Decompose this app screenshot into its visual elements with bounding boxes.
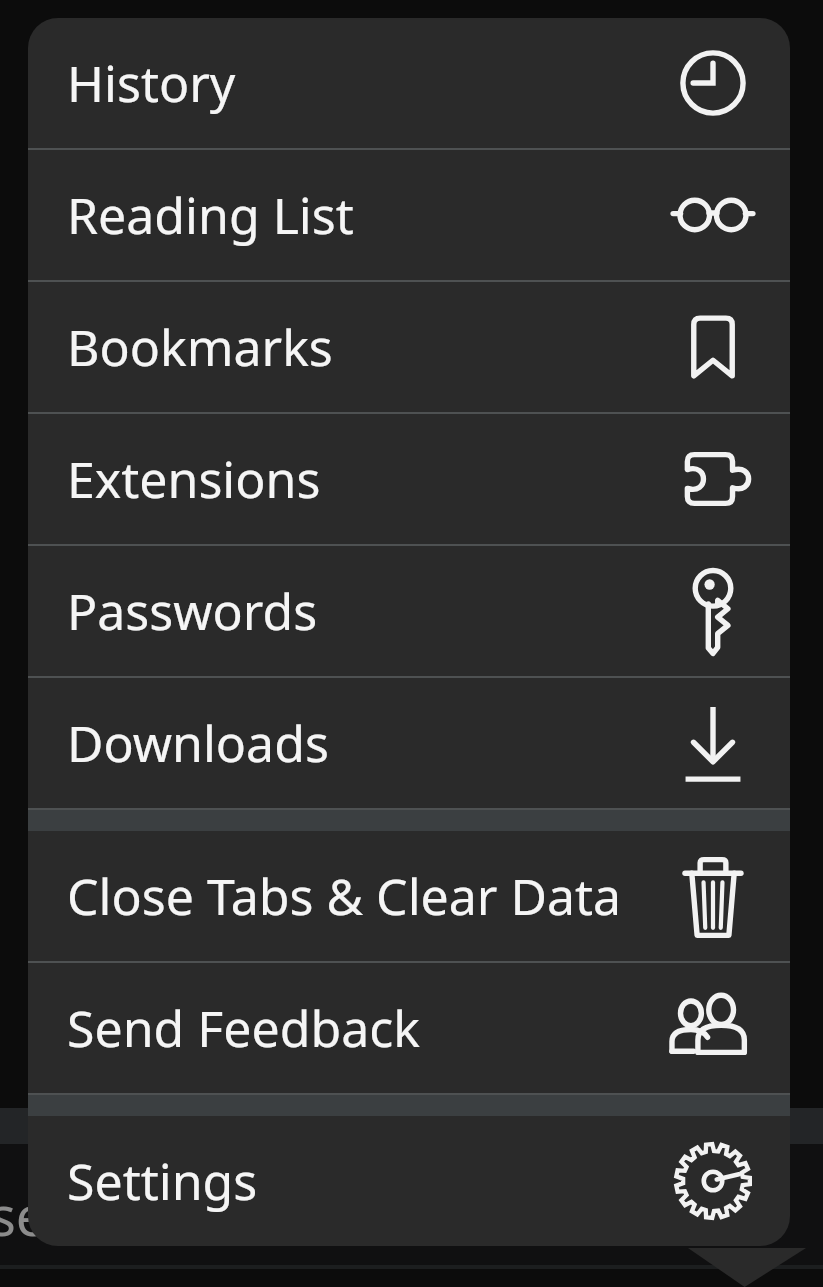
button[interactable]: Bookmarks [28, 282, 790, 412]
other: Settings [670, 1138, 756, 1224]
staticText: Bookmarks [67, 313, 670, 381]
other: Reading List [670, 172, 756, 258]
staticText: Extensions [67, 445, 670, 513]
button[interactable]: Reading List [28, 150, 790, 280]
other: Bookmarks [670, 304, 756, 390]
button[interactable]: Passwords [28, 546, 790, 676]
staticText: History [67, 49, 670, 117]
other: Downloads [670, 700, 756, 786]
button[interactable]: Settings [28, 1116, 790, 1246]
button[interactable]: Send Feedback [28, 963, 790, 1093]
staticText: Send Feedback [67, 994, 670, 1062]
other: Close Tabs and Clear Data [670, 853, 756, 939]
staticText: Settings [67, 1147, 670, 1215]
staticText: Downloads [67, 709, 670, 777]
other: History [670, 40, 756, 126]
button[interactable]: Extensions [28, 414, 790, 544]
other: Extensions [670, 436, 756, 522]
staticText: se [0, 1178, 47, 1252]
staticText: Close Tabs & Clear Data [67, 862, 670, 930]
button[interactable]: Downloads [28, 678, 790, 808]
other: Send Feedback [670, 985, 756, 1071]
staticText: Reading List [67, 181, 670, 249]
staticText: Passwords [67, 577, 670, 645]
button[interactable]: Close Tabs & Clear Data [28, 831, 790, 961]
button[interactable]: History [28, 18, 790, 148]
other: Passwords [670, 568, 756, 654]
